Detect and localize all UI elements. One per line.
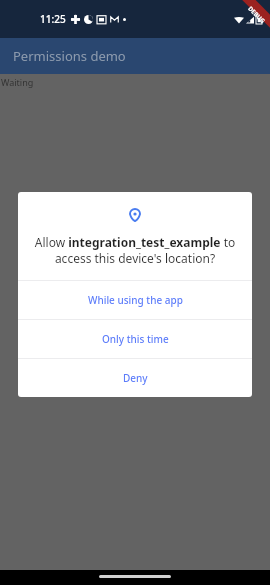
staticText: Waiting <box>1 76 34 88</box>
staticText: Only this time <box>102 332 169 346</box>
staticText: Allow integration_test_example to access… <box>32 234 238 266</box>
staticText: While using the app <box>88 293 183 307</box>
other: Location <box>128 208 142 222</box>
button[interactable]: While using the app <box>18 281 252 319</box>
button[interactable]: Only this time <box>18 320 252 358</box>
button[interactable]: Deny <box>18 359 252 397</box>
staticText: Permissions demo <box>13 47 126 65</box>
staticText: Deny <box>123 371 148 385</box>
staticText: DEBUG <box>246 5 267 25</box>
staticText: 11:25 <box>40 12 66 26</box>
